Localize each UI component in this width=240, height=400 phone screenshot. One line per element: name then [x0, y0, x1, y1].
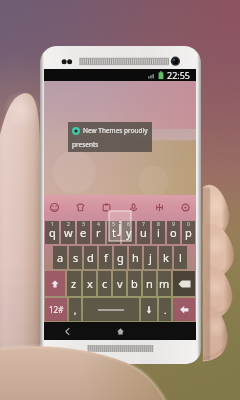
staticText: e — [80, 225, 87, 240]
button[interactable]: Settings — [177, 195, 194, 220]
staticText: b — [131, 276, 138, 291]
staticText: 2 — [67, 221, 70, 228]
staticText: 5 — [112, 221, 115, 228]
button[interactable]: v — [113, 271, 126, 296]
staticText: h — [132, 250, 139, 265]
staticText: New Themes proudly — [83, 126, 148, 135]
button[interactable]: Themes — [72, 195, 89, 220]
button[interactable]: h — [129, 246, 142, 269]
button[interactable]: d — [84, 246, 97, 269]
button[interactable]: 5 — [107, 221, 120, 244]
staticText: 22:55 — [167, 69, 191, 81]
staticText: 7 — [142, 221, 145, 228]
button[interactable]: Voice input — [125, 195, 142, 220]
staticText: y — [126, 225, 132, 240]
button[interactable]: Period — [159, 298, 171, 321]
staticText: . — [164, 304, 167, 316]
button[interactable]: Hide keyboard — [141, 298, 157, 321]
staticText: 12# — [49, 304, 64, 315]
staticText: j — [149, 250, 152, 265]
button[interactable]: 2 — [61, 221, 75, 244]
button[interactable]: Home — [109, 322, 131, 340]
button[interactable]: New Themes proudly — [68, 122, 152, 152]
staticText: 4 — [97, 221, 100, 228]
button[interactable]: 3 — [77, 221, 90, 244]
staticText: m — [159, 276, 170, 291]
staticText: c — [102, 276, 108, 291]
button[interactable]: 1 — [45, 221, 59, 244]
staticText: 9 — [172, 221, 175, 228]
staticText: x — [87, 276, 93, 291]
staticText: 3 — [82, 221, 85, 228]
button[interactable]: 8 — [152, 221, 165, 244]
button[interactable]: Shift — [45, 271, 65, 296]
staticText: a — [57, 250, 64, 265]
staticText: s — [73, 250, 79, 265]
button[interactable]: 4 — [92, 221, 105, 244]
button[interactable]: Back — [56, 322, 78, 340]
button[interactable]: m — [158, 271, 171, 296]
button[interactable]: c — [98, 271, 111, 296]
button[interactable]: 0 — [182, 221, 195, 244]
button[interactable]: Resize keyboard — [151, 195, 168, 220]
staticText: i — [157, 225, 160, 240]
button[interactable]: b — [128, 271, 141, 296]
staticText: v — [117, 276, 123, 291]
staticText: 8 — [157, 221, 160, 228]
button[interactable]: g — [114, 246, 127, 269]
staticText: q — [49, 225, 56, 240]
staticText: presents — [72, 140, 99, 149]
button[interactable]: z — [67, 271, 81, 296]
button[interactable]: Enter — [173, 298, 195, 321]
staticText: p — [185, 225, 192, 240]
staticText: g — [117, 250, 124, 265]
button[interactable]: Comma — [69, 298, 81, 321]
button[interactable]: k — [159, 246, 172, 269]
button[interactable]: a — [53, 246, 67, 269]
button[interactable]: f — [99, 246, 112, 269]
button[interactable]: s — [69, 246, 82, 269]
staticText: t — [112, 225, 116, 240]
staticText: f — [104, 250, 108, 265]
button[interactable]: 6 — [122, 221, 135, 244]
staticText: k — [163, 250, 169, 265]
staticText: z — [71, 276, 77, 291]
button[interactable]: Emoji — [46, 195, 63, 220]
staticText: , — [74, 304, 77, 316]
button[interactable]: l — [174, 246, 187, 269]
staticText: u — [140, 225, 147, 240]
button[interactable]: Space — [83, 298, 139, 321]
staticText: o — [170, 225, 177, 240]
staticText: r — [96, 225, 101, 240]
button[interactable]: n — [143, 271, 156, 296]
staticText: n — [146, 276, 153, 291]
staticText: w — [64, 225, 73, 240]
staticText: l — [179, 250, 182, 265]
button[interactable]: Clipboard — [98, 195, 115, 220]
staticText: 1 — [51, 221, 54, 228]
button[interactable]: 12# — [45, 298, 67, 321]
button[interactable]: x — [83, 271, 96, 296]
staticText: 6 — [127, 221, 130, 228]
button[interactable]: j — [144, 246, 157, 269]
button[interactable]: Backspace — [173, 271, 195, 296]
button[interactable]: 7 — [137, 221, 150, 244]
button[interactable]: 9 — [167, 221, 180, 244]
staticText: d — [87, 250, 94, 265]
staticText: j — [118, 216, 122, 236]
staticText: 0 — [187, 221, 190, 228]
